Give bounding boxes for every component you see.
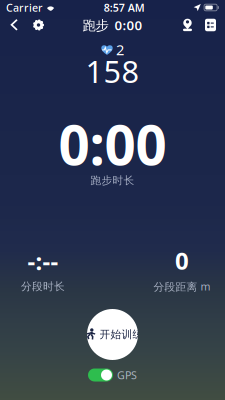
button[interactable]: 开始训练: [87, 309, 138, 360]
staticText: 跑步时长: [90, 174, 134, 187]
staticText: 分段距离 m: [153, 279, 210, 294]
staticText: GPS: [117, 368, 137, 382]
staticText: -:--: [27, 245, 58, 277]
button[interactable]: Map: [178, 15, 197, 35]
staticText: Carrier: [6, 0, 43, 15]
staticText: 分段时长: [21, 280, 65, 293]
staticText: 跑步 0:00: [82, 16, 142, 34]
staticText: 8:57 AM: [104, 0, 145, 15]
staticText: 0: [175, 244, 189, 276]
staticText: 158: [85, 51, 139, 91]
staticText: 0:00: [58, 108, 166, 180]
staticText: 开始训练: [99, 328, 143, 341]
button[interactable]: Settings: [30, 15, 47, 35]
button[interactable]: Back: [5, 15, 22, 35]
staticText: 2: [116, 40, 124, 59]
button[interactable]: Records: [201, 15, 220, 35]
